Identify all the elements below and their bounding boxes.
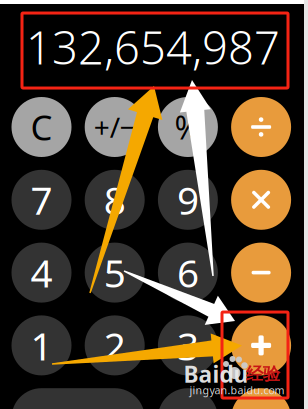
button[interactable]: 4 (11, 243, 71, 303)
staticText: 4 (30, 247, 52, 298)
staticText: 经验 (246, 363, 280, 385)
button[interactable]: % (158, 97, 218, 157)
button[interactable]: 6 (158, 243, 218, 303)
staticText: 6 (177, 247, 199, 298)
button[interactable]: Divide (231, 97, 291, 157)
button[interactable]: +/− (85, 97, 145, 157)
button[interactable]: 1 (11, 315, 71, 375)
staticText: Baidu (183, 359, 248, 389)
button[interactable]: 3 (158, 315, 218, 375)
staticText: C (30, 104, 52, 150)
button[interactable]: . (158, 388, 218, 409)
button[interactable]: 2 (85, 315, 145, 375)
staticText: = (250, 392, 272, 409)
button[interactable]: Add (231, 315, 291, 375)
staticText: 132,654,987 (26, 17, 280, 77)
staticText: +/− (94, 108, 136, 146)
staticText: 9 (177, 174, 199, 225)
button[interactable]: C (11, 97, 71, 157)
button[interactable]: Subtract (231, 243, 291, 303)
button[interactable]: Zero (11, 388, 145, 409)
button[interactable]: Multiply (231, 170, 291, 230)
button[interactable]: 7 (11, 170, 71, 230)
staticText: 3 (177, 320, 199, 371)
button[interactable]: 9 (158, 170, 218, 230)
staticText: % (174, 106, 201, 148)
staticText: 1 (30, 320, 52, 371)
staticText: . (183, 392, 193, 409)
button[interactable]: 8 (85, 170, 145, 230)
button[interactable]: 5 (85, 243, 145, 303)
staticText: 8 (104, 174, 126, 225)
staticText: jingyan.baidu.com (189, 383, 284, 397)
staticText: 7 (30, 174, 52, 225)
button[interactable]: = (231, 388, 291, 409)
staticText: 5 (104, 247, 126, 298)
staticText: 2 (104, 320, 126, 371)
